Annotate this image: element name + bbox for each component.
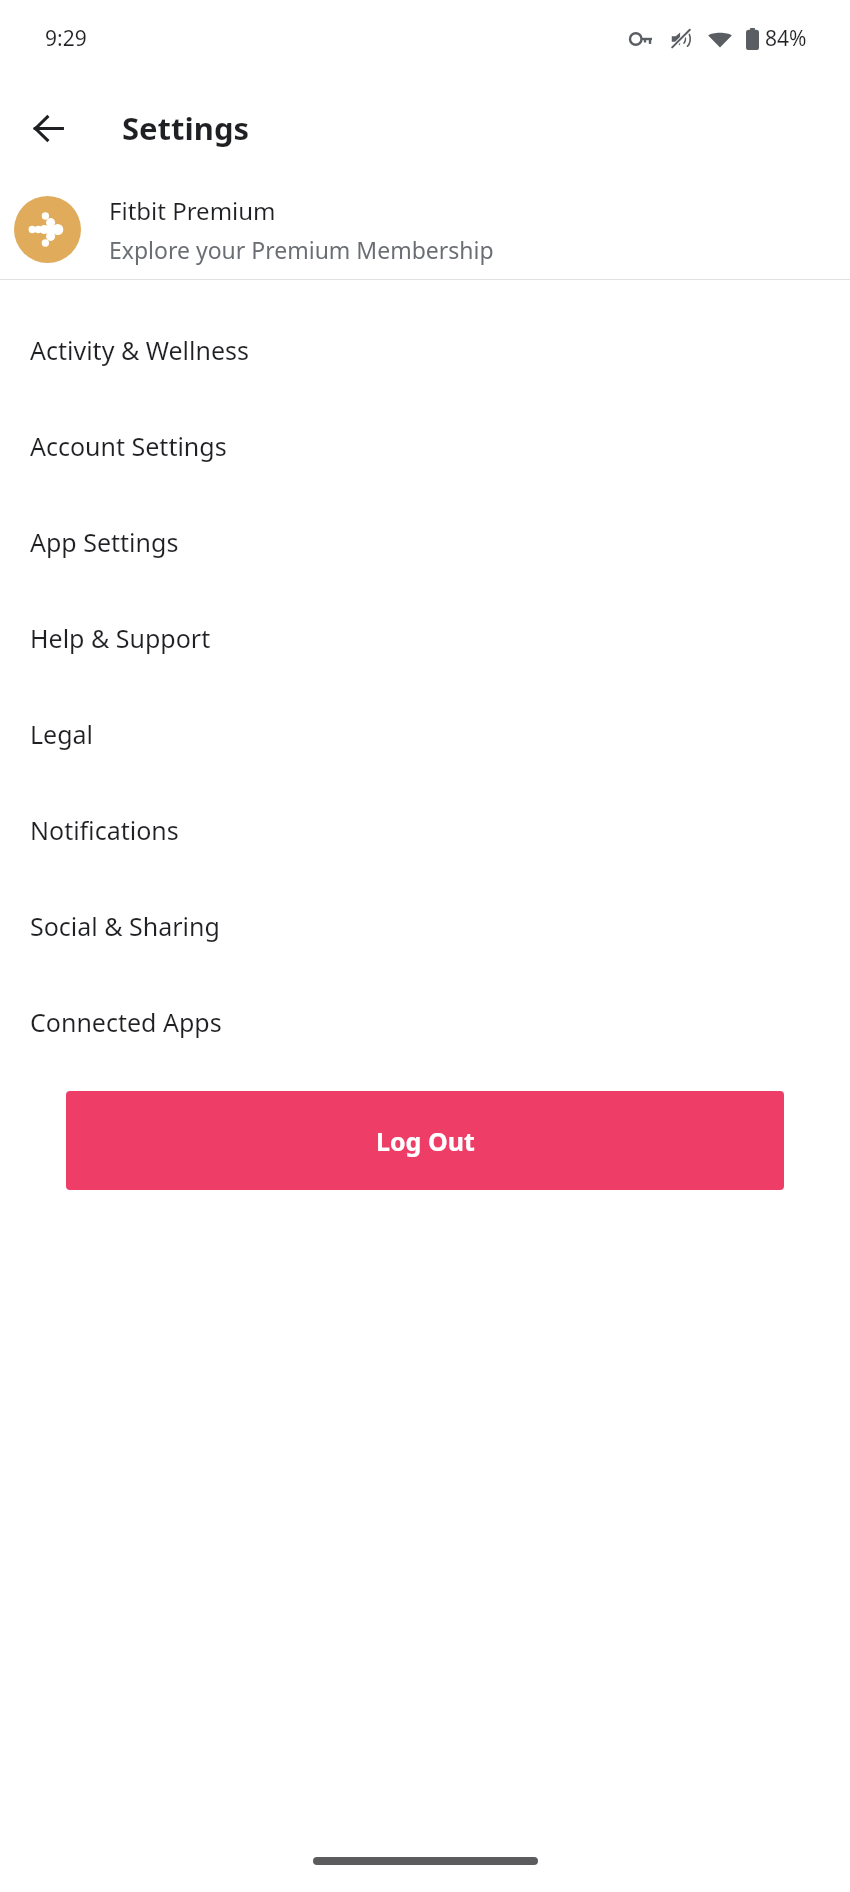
button[interactable]: App Settings: [0, 494, 850, 590]
staticText: Social & Sharing: [30, 909, 220, 943]
button[interactable]: Notifications: [0, 782, 850, 878]
button[interactable]: Connected Apps: [0, 974, 850, 1070]
staticText: 84%: [765, 24, 807, 53]
button[interactable]: Log Out: [66, 1091, 784, 1190]
button[interactable]: Back: [17, 97, 79, 159]
staticText: Explore your Premium Membership: [109, 234, 494, 265]
staticText: Log Out: [376, 1124, 475, 1158]
staticText: Activity & Wellness: [30, 333, 249, 367]
button[interactable]: Account Settings: [0, 398, 850, 494]
button[interactable]: Social & Sharing: [0, 878, 850, 974]
staticText: App Settings: [30, 525, 179, 559]
staticText: Legal: [30, 717, 94, 751]
staticText: Fitbit Premium: [109, 194, 276, 227]
staticText: 9:29: [45, 24, 87, 53]
staticText: Connected Apps: [30, 1005, 222, 1039]
staticText: Notifications: [30, 813, 179, 847]
button[interactable]: Fitbit Premium: [0, 179, 850, 279]
button[interactable]: Help & Support: [0, 590, 850, 686]
staticText: Help & Support: [30, 621, 211, 655]
staticText: Account Settings: [30, 429, 227, 463]
button[interactable]: Legal: [0, 686, 850, 782]
button[interactable]: Activity & Wellness: [0, 302, 850, 398]
staticText: Settings: [122, 107, 250, 149]
